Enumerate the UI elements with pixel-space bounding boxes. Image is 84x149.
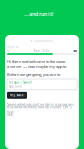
staticText: … and run it! xyxy=(24,10,53,18)
staticText: let app = Swoo() xyxy=(9,81,32,84)
staticText: × xyxy=(7,48,9,54)
staticText: Hi there and welcome to the swoo xyxy=(7,59,65,64)
staticText: Swoo what you just wrote is a program xyxy=(7,102,74,107)
staticText: Run · 0.2s xyxy=(34,49,49,53)
staticText: out. xyxy=(7,112,13,117)
staticText: a server — now maybe my app to xyxy=(7,64,66,69)
staticText: Before we get going, you are to xyxy=(7,72,60,77)
staticText: app.run() xyxy=(9,85,22,88)
staticText: Hey, Swoo! xyxy=(9,93,24,97)
staticText: But what do these words mean? Let's find xyxy=(7,104,72,115)
button[interactable]: Hey, Swoo! xyxy=(7,92,27,99)
